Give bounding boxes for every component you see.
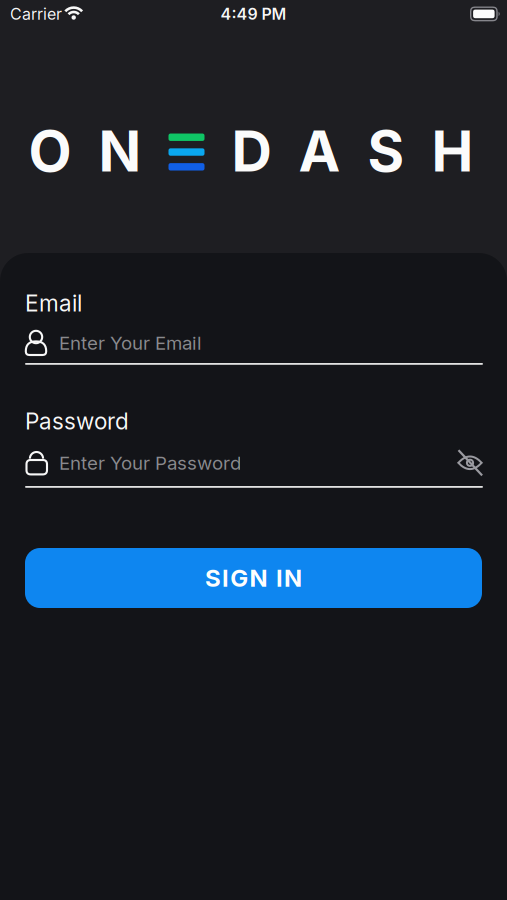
staticText: S: [367, 118, 404, 184]
button[interactable]: Show password: [457, 450, 482, 476]
staticText: D: [231, 118, 271, 184]
staticText: O: [28, 118, 71, 184]
staticText: G: [230, 564, 248, 592]
staticText: Enter Your Password: [59, 452, 241, 474]
staticText: Password: [25, 408, 129, 435]
staticText: A: [298, 118, 340, 184]
staticText: H: [431, 118, 473, 184]
staticText: S: [205, 564, 221, 592]
button[interactable]: S: [25, 548, 482, 608]
staticText: N: [98, 118, 141, 184]
staticText: I: [276, 564, 283, 592]
staticText: N: [284, 564, 302, 592]
staticText: Email: [25, 290, 82, 317]
staticText: Enter Your Email: [59, 332, 202, 354]
staticText: Carrier: [10, 5, 62, 23]
staticText: 4:49 PM: [220, 5, 286, 23]
staticText: I: [222, 564, 229, 592]
staticText: N: [249, 564, 267, 592]
